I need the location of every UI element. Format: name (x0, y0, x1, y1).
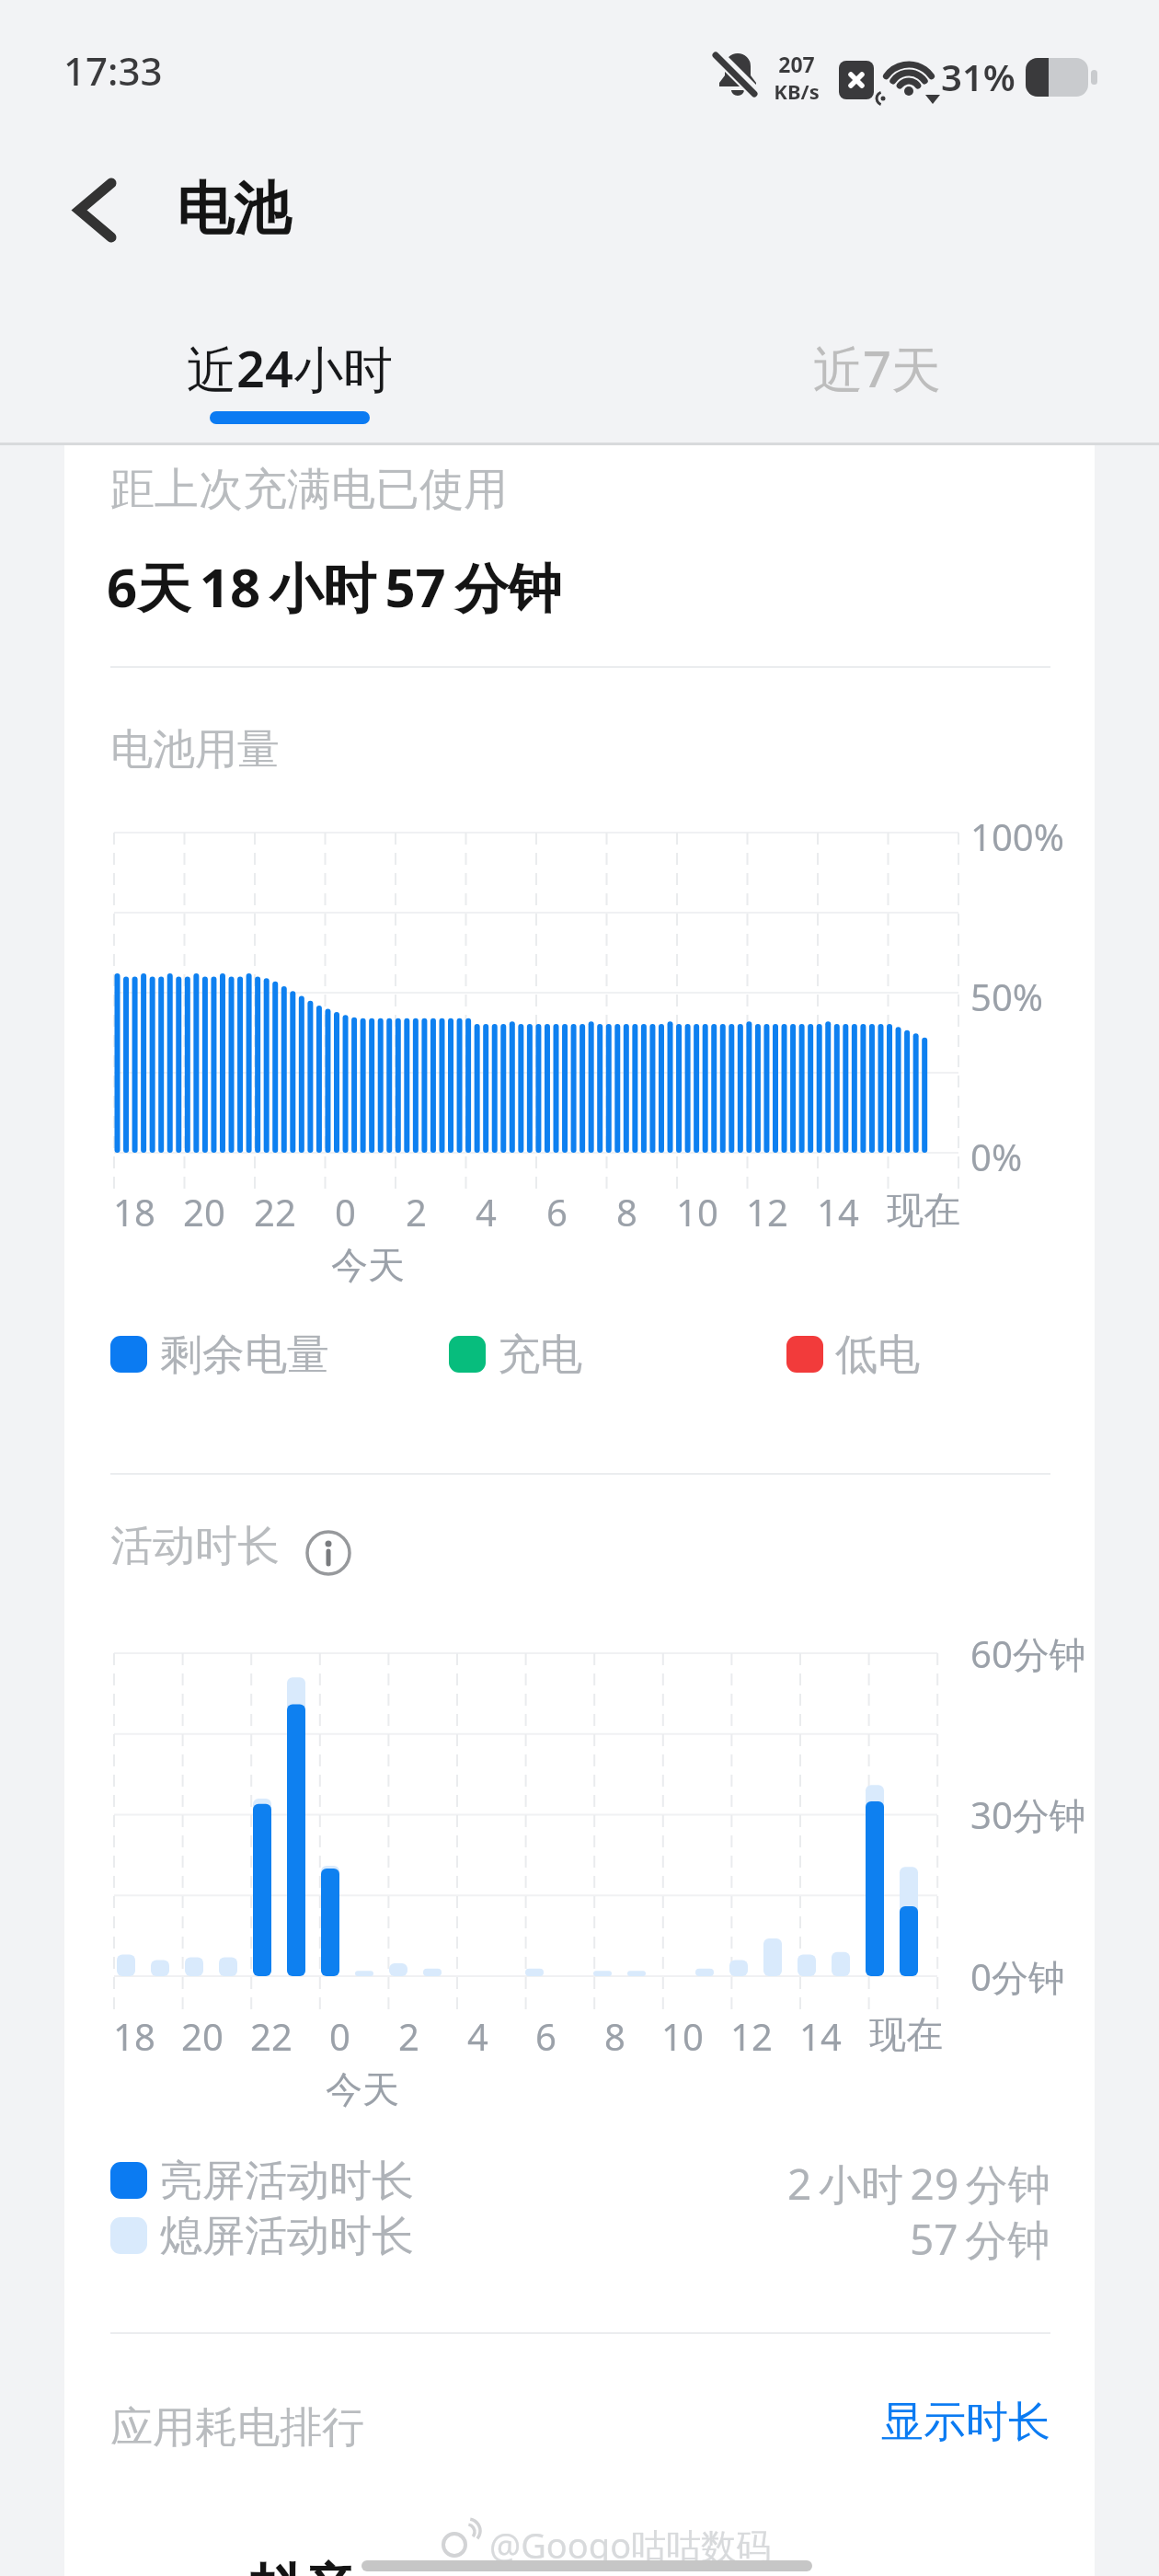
staticText: 8 (616, 1187, 637, 1236)
staticText: 50% (970, 972, 1043, 1021)
staticText: 近7天 (813, 334, 941, 402)
staticText: 17:33 (63, 44, 163, 97)
staticText: 亮屏活动时长 (160, 2155, 414, 2208)
button[interactable] (166, 327, 414, 432)
staticText: 抖音 (250, 2556, 357, 2576)
staticText: 充电 (498, 1328, 582, 1382)
staticText: 8 (604, 2011, 625, 2061)
staticText: 0% (970, 1132, 1023, 1181)
staticText: 应用耗电排行 (110, 2401, 364, 2455)
staticText: 电池 (177, 173, 291, 245)
button[interactable] (295, 1520, 361, 1586)
staticText: 18 (113, 1187, 155, 1236)
staticText: 2 (406, 1187, 427, 1236)
staticText: 22 (250, 2011, 293, 2061)
staticText: 0 (329, 2011, 350, 2061)
staticText: 57 分钟 (910, 2210, 1050, 2268)
staticText: 20 (183, 1187, 225, 1236)
staticText: 12 (746, 1187, 788, 1236)
staticText: 18 (113, 2011, 155, 2061)
staticText: 低电 (835, 1328, 920, 1382)
staticText: 4 (467, 2011, 488, 2061)
staticText: 活动时长 (110, 1520, 280, 1573)
button[interactable] (55, 166, 147, 258)
staticText: 现在 (869, 2011, 943, 2057)
staticText: 今天 (326, 2066, 399, 2112)
staticText: 距上次充满电已使用 (110, 462, 508, 517)
staticText: 熄屏活动时长 (160, 2210, 414, 2263)
staticText: 2 (398, 2011, 419, 2061)
staticText: 14 (817, 1187, 859, 1236)
staticText: 6 (546, 1187, 568, 1236)
staticText: 4 (476, 1187, 497, 1236)
staticText: 20 (181, 2011, 224, 2061)
staticText: 31% (941, 52, 1016, 101)
staticText: 显示时长 (881, 2396, 1050, 2449)
staticText: KB/s (774, 77, 820, 105)
staticText: 0 (335, 1187, 356, 1236)
staticText: 2 小时 29 分钟 (787, 2155, 1050, 2213)
staticText: 电池用量 (110, 723, 280, 776)
staticText: 30分钟 (970, 1789, 1086, 1840)
staticText: 6 (535, 2011, 557, 2061)
button[interactable] (752, 327, 1001, 432)
staticText: @Googo咕咕数码 (489, 2521, 772, 2569)
staticText: 10 (676, 1187, 718, 1236)
staticText: 12 (730, 2011, 773, 2061)
staticText: 6天 18 小时 57 分钟 (107, 550, 562, 623)
staticText: 60分钟 (970, 1628, 1086, 1679)
staticText: 现在 (887, 1187, 960, 1233)
button[interactable]: 显示时长 (866, 2396, 1050, 2451)
staticText: 10 (661, 2011, 704, 2061)
staticText: 0分钟 (970, 1951, 1065, 2002)
staticText: 22 (254, 1187, 296, 1236)
staticText: 14 (799, 2011, 842, 2061)
staticText: 今天 (331, 1242, 405, 1288)
staticText: 207 (778, 50, 815, 78)
staticText: 近24小时 (187, 334, 393, 402)
button[interactable]: 抖音 (138, 2550, 874, 2576)
staticText: 100% (970, 811, 1064, 861)
staticText: 剩余电量 (160, 1328, 329, 1382)
